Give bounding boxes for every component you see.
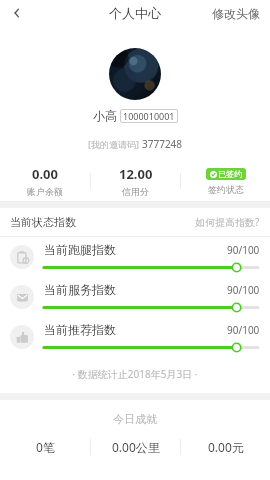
staticText: 90/100 bbox=[227, 243, 260, 257]
button[interactable]: 当前跑腿指数 bbox=[0, 237, 270, 277]
button[interactable]: Avatar bbox=[109, 48, 161, 100]
staticText: 信用分 bbox=[122, 186, 149, 197]
button[interactable]: 如何提高指数? bbox=[195, 215, 260, 229]
button[interactable]: 0.00公里 bbox=[91, 439, 180, 455]
staticText: 90/100 bbox=[227, 323, 260, 337]
staticText: 如何提高指数? bbox=[195, 215, 260, 229]
button[interactable]: 0.00元 bbox=[181, 439, 270, 455]
staticText: 3777248 bbox=[142, 137, 183, 151]
staticText: 当前状态指数 bbox=[10, 215, 76, 229]
button[interactable]: 0.00 bbox=[0, 165, 90, 197]
staticText: · 数据统计止2018年5月3日 · bbox=[0, 367, 270, 381]
staticText: 0.00元 bbox=[208, 439, 244, 455]
button[interactable]: 修改头像 bbox=[202, 2, 270, 25]
staticText: 签约状态 bbox=[208, 184, 244, 195]
staticText: 小高 bbox=[93, 108, 117, 123]
staticText: 当前服务指数 bbox=[44, 282, 116, 297]
button[interactable]: Back bbox=[0, 0, 34, 26]
button[interactable]: 已签约 bbox=[181, 168, 270, 195]
button[interactable]: 0笔 bbox=[0, 439, 90, 455]
button[interactable]: 当前服务指数 bbox=[0, 277, 270, 317]
button[interactable]: 12.00 bbox=[91, 165, 180, 197]
staticText: 1000010001 bbox=[123, 110, 175, 122]
staticText: 当前推荐指数 bbox=[44, 322, 116, 337]
staticText: 0.00 bbox=[32, 165, 58, 183]
staticText: 12.00 bbox=[119, 165, 153, 183]
staticText: 今日成就 bbox=[0, 412, 270, 426]
staticText: 0笔 bbox=[36, 439, 55, 455]
staticText: 个人中心 bbox=[109, 5, 161, 21]
staticText: 账户余额 bbox=[27, 186, 63, 197]
staticText: [我的邀请码] bbox=[88, 138, 139, 150]
staticText: 当前跑腿指数 bbox=[44, 242, 116, 257]
button[interactable]: 当前推荐指数 bbox=[0, 317, 270, 357]
staticText: 修改头像 bbox=[212, 6, 260, 21]
staticText: 已签约 bbox=[218, 169, 242, 179]
staticText: 0.00公里 bbox=[112, 439, 160, 455]
staticText: 90/100 bbox=[227, 283, 260, 297]
